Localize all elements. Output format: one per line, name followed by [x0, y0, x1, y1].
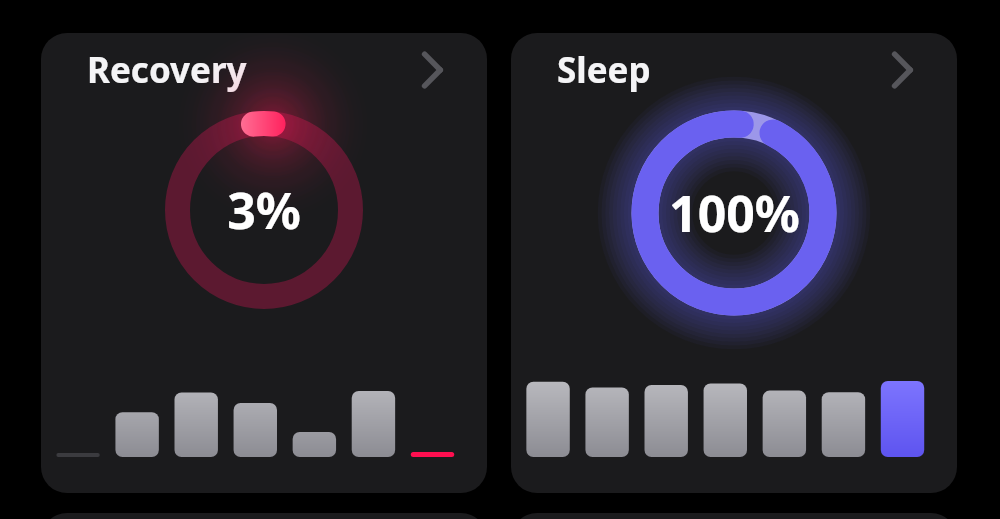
button[interactable] [41, 513, 487, 519]
staticText: 100% [669, 179, 800, 247]
button[interactable]: Open Recovery details [41, 33, 487, 493]
button[interactable] [511, 513, 957, 519]
button[interactable]: Open Sleep details [511, 33, 957, 493]
staticText: Sleep [557, 46, 651, 94]
staticText: Recovery [87, 46, 247, 94]
staticText: 3% [227, 176, 301, 244]
